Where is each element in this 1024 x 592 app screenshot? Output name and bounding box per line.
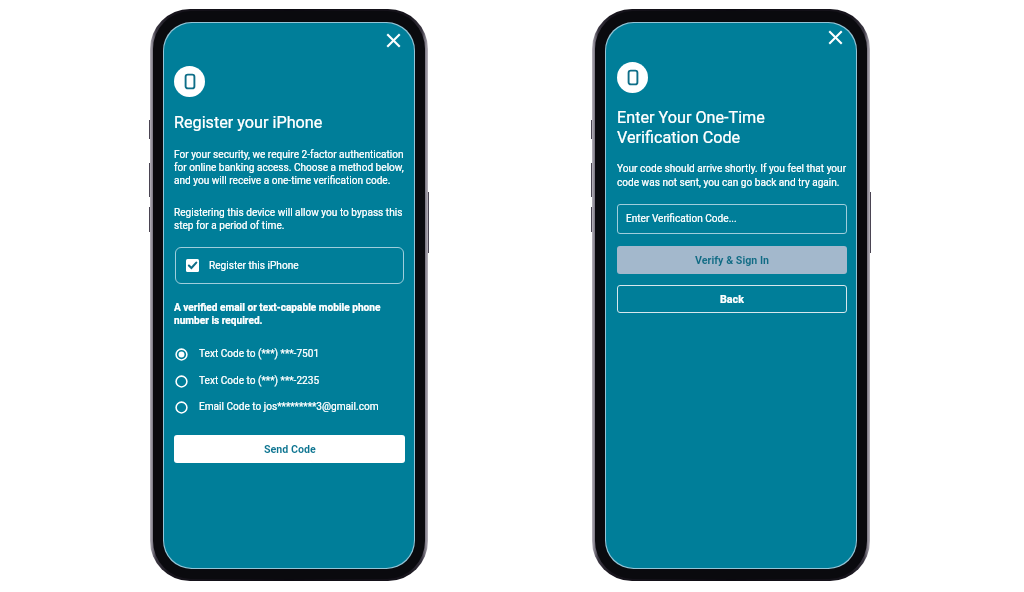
button[interactable]: Text Code to (***) ***-2235 — [175, 371, 404, 391]
button[interactable]: Enter Verification Code... — [617, 204, 847, 234]
staticText: Your code should arrive shortly. If you … — [617, 163, 849, 188]
button[interactable]: Back — [617, 285, 847, 313]
staticText: Enter Verification Code... — [626, 213, 737, 225]
staticText: For your security, we require 2-factor a… — [174, 149, 406, 187]
button[interactable]: Email Code to jos*********3@gmail.com — [175, 397, 404, 417]
staticText: Registering this device will allow you t… — [174, 207, 406, 232]
staticText: Text Code to (***) ***-7501 — [199, 348, 320, 360]
button[interactable]: Close — [380, 27, 406, 53]
staticText: Email Code to jos*********3@gmail.com — [199, 401, 379, 413]
staticText: Register this iPhone — [209, 260, 299, 272]
staticText: Text Code to (***) ***-2235 — [199, 375, 320, 387]
button[interactable]: Send Code — [174, 435, 405, 463]
button[interactable]: Verify & Sign In — [617, 246, 847, 274]
staticText: Verify & Sign In — [695, 254, 770, 267]
staticText: Register your iPhone — [174, 113, 323, 132]
staticText: Enter Your One-Time Verification Code — [617, 108, 765, 147]
staticText: Back — [720, 293, 744, 306]
staticText: A verified email or text-capable mobile … — [174, 302, 389, 327]
staticText: Send Code — [264, 443, 316, 456]
button[interactable]: Close — [822, 24, 848, 50]
button[interactable]: Register this iPhone — [175, 247, 404, 284]
button[interactable]: Text Code to (***) ***-7501 — [175, 344, 404, 364]
